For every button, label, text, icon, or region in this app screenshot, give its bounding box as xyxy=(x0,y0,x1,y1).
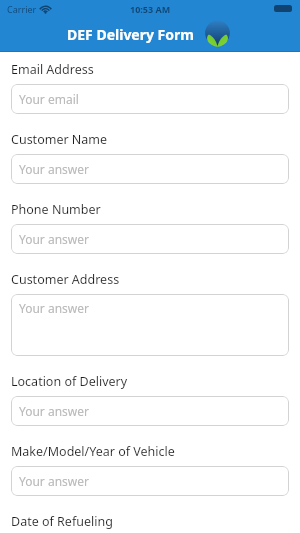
staticText: Date of Refueling xyxy=(11,513,113,530)
staticText: Your answer xyxy=(19,231,89,247)
button[interactable]: Your answer xyxy=(11,224,289,254)
staticText: Customer Name xyxy=(11,131,108,148)
button[interactable]: Your answer xyxy=(11,294,289,356)
staticText: Make/Model/Year of Vehicle xyxy=(11,443,175,460)
button[interactable]: Your answer xyxy=(11,466,289,496)
staticText: DEF Delivery Form xyxy=(67,25,194,44)
staticText: Your answer xyxy=(19,403,89,419)
button[interactable]: Your answer xyxy=(11,396,289,426)
other: App logo xyxy=(202,19,233,50)
staticText: Your answer xyxy=(19,300,89,316)
button[interactable]: Your answer xyxy=(11,154,289,184)
staticText: Phone Number xyxy=(11,201,101,218)
staticText: Your answer xyxy=(19,473,89,489)
staticText: Location of Delivery xyxy=(11,373,128,390)
staticText: Your answer xyxy=(19,161,89,177)
staticText: Your email xyxy=(19,91,79,107)
staticText: Email Address xyxy=(11,61,94,78)
button[interactable]: Your email xyxy=(11,84,289,114)
staticText: Customer Address xyxy=(11,271,120,288)
staticText: 10:53 AM xyxy=(130,3,171,15)
staticText: Carrier xyxy=(7,3,37,15)
